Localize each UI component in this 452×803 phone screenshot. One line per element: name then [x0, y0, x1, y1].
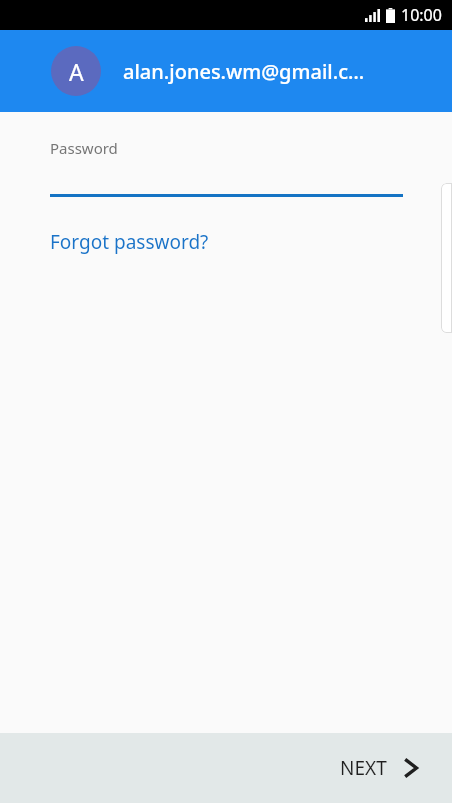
staticText: 10:00	[401, 4, 442, 26]
button[interactable]: NEXT	[326, 745, 432, 791]
staticText: Forgot password?	[50, 229, 209, 255]
staticText: Password	[50, 138, 118, 158]
staticText: A	[69, 56, 84, 87]
button[interactable]: Forgot password?	[50, 229, 209, 255]
button[interactable]: A	[0, 30, 452, 112]
staticText: alan.jones.wm@gmail.c…	[123, 58, 365, 85]
staticText: NEXT	[340, 755, 387, 781]
